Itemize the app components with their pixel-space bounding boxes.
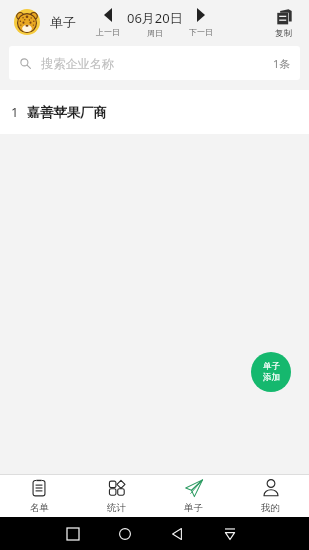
- staticText: 1条: [273, 56, 291, 71]
- button[interactable]: Home: [110, 517, 140, 550]
- button[interactable]: 统计: [78, 475, 155, 517]
- button[interactable]: Recent apps: [58, 517, 88, 550]
- button[interactable]: 我的: [232, 475, 309, 517]
- staticText: 名单: [30, 502, 49, 514]
- staticText: 复制: [275, 28, 292, 39]
- staticText: 嘉善苹果厂商: [27, 104, 107, 121]
- staticText: 单子: [50, 14, 76, 30]
- button[interactable]: Previous day: [92, 0, 123, 45]
- button[interactable]: Back: [162, 517, 192, 550]
- other: Profile: [14, 9, 40, 35]
- staticText: 上一日: [96, 27, 120, 37]
- button[interactable]: 复制: [275, 0, 292, 45]
- button[interactable]: 名单: [0, 475, 78, 517]
- staticText: 单子: [263, 361, 280, 372]
- button[interactable]: 单子: [251, 352, 291, 392]
- staticText: 添加: [263, 372, 280, 383]
- button[interactable]: Hide keyboard: [215, 517, 245, 550]
- button[interactable]: Next day: [185, 0, 216, 45]
- staticText: 下一日: [189, 27, 213, 37]
- button[interactable]: 单子: [155, 475, 232, 517]
- button[interactable]: 1: [0, 90, 309, 134]
- staticText: 1: [11, 103, 19, 121]
- staticText: 我的: [261, 502, 280, 514]
- staticText: 06月20日: [127, 9, 183, 27]
- button[interactable]: 搜索企业名称: [9, 46, 300, 80]
- staticText: 单子: [184, 502, 203, 514]
- staticText: 统计: [107, 502, 126, 514]
- staticText: 周日: [147, 28, 163, 38]
- staticText: 搜索企业名称: [41, 56, 115, 71]
- button[interactable]: Profile: [14, 9, 76, 35]
